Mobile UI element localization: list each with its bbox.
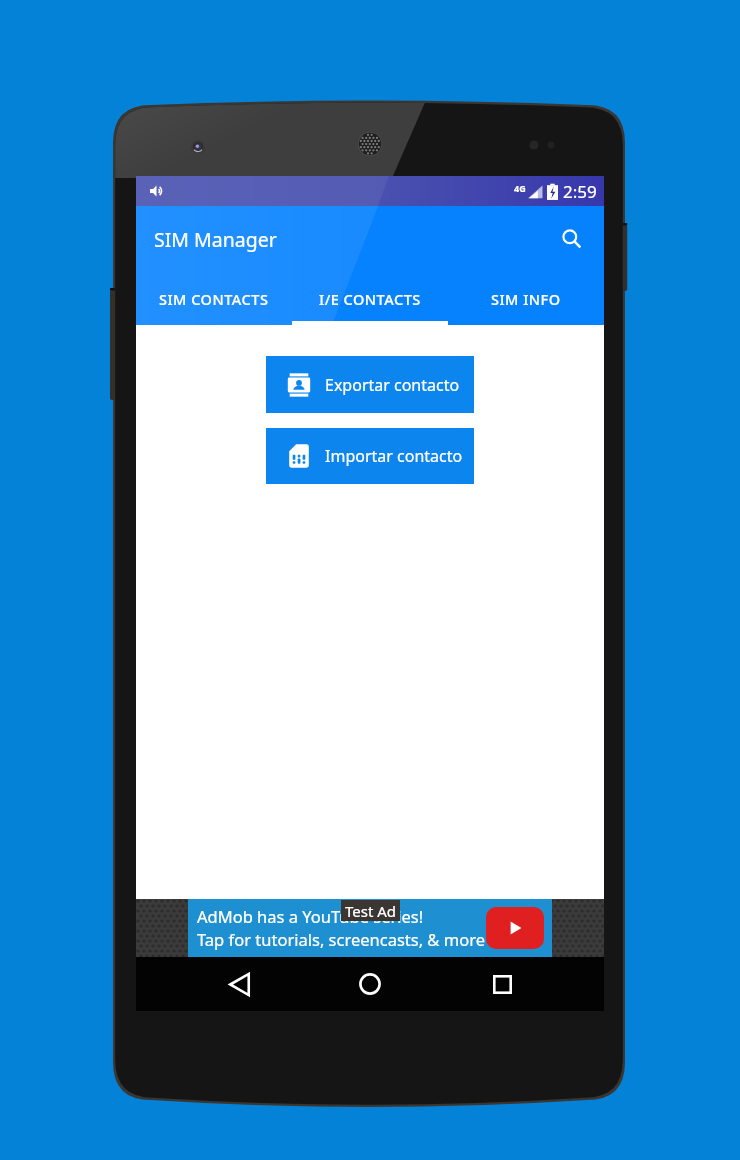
button[interactable]: Search	[552, 219, 592, 259]
button[interactable]: AdMob has a YouTube series!	[188, 899, 552, 957]
button[interactable]: SIM INFO	[448, 272, 604, 325]
staticText: SIM CONTACTS	[159, 289, 269, 309]
staticText: SIM Manager	[154, 226, 277, 253]
staticText: Exportar contacto	[325, 374, 460, 396]
button[interactable]: I/E CONTACTS	[292, 272, 448, 325]
staticText: AdMob has a YouTube series!	[197, 905, 424, 927]
staticText: 4G	[514, 182, 526, 194]
button[interactable]: Importar contacto	[266, 428, 474, 484]
staticText: 2:59	[563, 180, 597, 203]
button[interactable]: Exportar contacto	[266, 356, 474, 413]
staticText: Test Ad	[345, 901, 397, 921]
staticText: I/E CONTACTS	[319, 289, 421, 309]
button[interactable]: Recents	[478, 957, 526, 1011]
button[interactable]: Home	[346, 957, 394, 1011]
button[interactable]: Back	[215, 957, 263, 1011]
staticText: SIM INFO	[491, 289, 561, 309]
staticText: Importar contacto	[325, 445, 463, 467]
staticText: Tap for tutorials, screencasts, & more.	[197, 928, 486, 950]
button[interactable]: SIM CONTACTS	[136, 272, 292, 325]
